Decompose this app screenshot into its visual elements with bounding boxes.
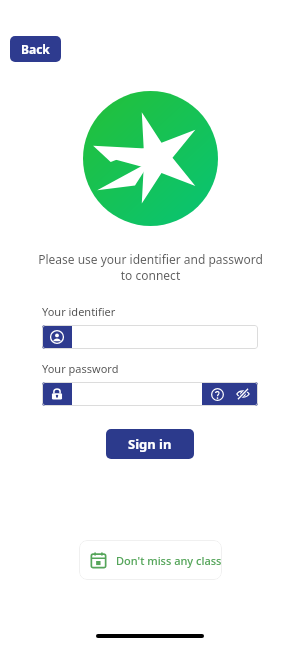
staticText: Your password — [42, 361, 119, 376]
staticText: Back — [21, 41, 50, 57]
button[interactable] — [72, 382, 202, 406]
button[interactable]: Password help — [205, 382, 229, 406]
button[interactable]: Back — [10, 36, 61, 62]
button[interactable]: Show password — [231, 382, 255, 406]
button[interactable]: Don't miss any class — [79, 540, 222, 580]
staticText: Your identifier — [42, 304, 116, 319]
staticText: Please use your identifier and password … — [38, 251, 263, 283]
staticText: Don't miss any class — [116, 553, 222, 568]
staticText: Sign in — [128, 435, 172, 453]
button[interactable] — [42, 325, 258, 349]
button[interactable]: Sign in — [106, 429, 194, 459]
